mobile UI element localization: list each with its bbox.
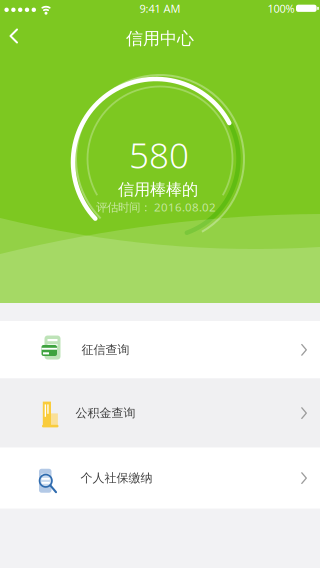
staticText: 个人社保缴纳: [80, 470, 152, 485]
staticText: 信用棒棒的: [118, 179, 198, 200]
button[interactable]: Back: [0, 20, 44, 52]
staticText: 100%: [267, 1, 294, 16]
button[interactable]: 个人社保缴纳: [0, 447, 320, 508]
button[interactable]: 征信查询: [0, 321, 320, 378]
staticText: 信用中心: [126, 28, 194, 49]
staticText: 评估时间： 2016.08.02: [96, 199, 216, 215]
staticText: 征信查询: [81, 342, 129, 357]
staticText: 580: [129, 131, 189, 179]
staticText: 9:41 AM: [139, 1, 180, 16]
button[interactable]: 公积金查询: [0, 378, 320, 447]
staticText: 公积金查询: [75, 405, 135, 420]
